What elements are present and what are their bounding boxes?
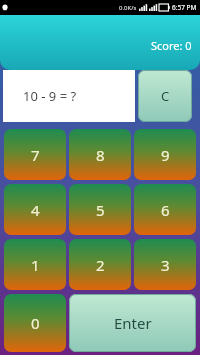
staticText: Enter [114,313,152,333]
button[interactable]: C [138,70,192,122]
button[interactable]: 7 [4,129,66,180]
staticText: 0 [31,313,40,333]
staticText: 9 [161,145,170,165]
staticText: 1 [31,255,40,275]
button[interactable]: 8 [69,129,131,180]
staticText: 6:57 PM [172,3,197,12]
staticText: 8 [96,145,105,165]
button[interactable]: 3 [134,239,196,290]
button[interactable]: 2 [69,239,131,290]
button[interactable]: 1 [4,239,66,290]
button[interactable]: 4 [4,184,66,235]
button[interactable]: 5 [69,184,131,235]
staticText: 0.0K/s [119,4,137,12]
staticText: 3 [161,255,170,275]
staticText: 4 [31,200,40,220]
staticText: Score: 0 [151,38,192,53]
button[interactable]: 9 [134,129,196,180]
staticText: 10 - 9 = ? [23,87,77,105]
button[interactable]: 6 [134,184,196,235]
button[interactable]: 0 [4,294,66,352]
staticText: 2 [96,255,105,275]
staticText: 7 [31,145,40,165]
button[interactable]: 10 - 9 = ? [3,70,135,122]
staticText: 6 [161,200,170,220]
button[interactable]: Enter [69,294,196,352]
staticText: C [161,87,170,105]
staticText: 5 [96,200,105,220]
